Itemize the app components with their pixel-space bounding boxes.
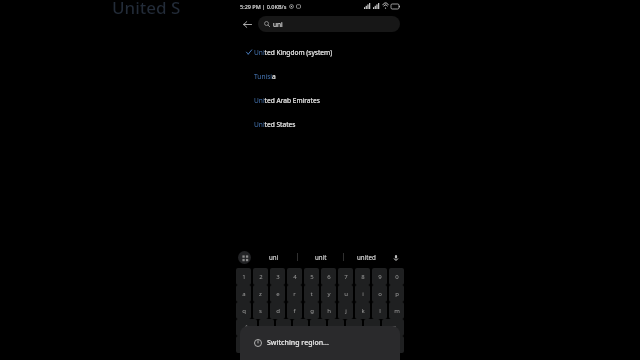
button[interactable]: r — [287, 285, 302, 302]
button[interactable]: 0 — [389, 268, 404, 285]
staticText: t — [310, 290, 313, 298]
button[interactable]: l — [372, 302, 387, 319]
staticText: United S — [112, 0, 181, 19]
button[interactable]: c — [293, 319, 308, 336]
staticText: n — [352, 324, 356, 332]
button[interactable]: uni — [251, 246, 297, 268]
button[interactable]: p — [389, 285, 404, 302]
staticText: v — [316, 324, 320, 332]
staticText: 4 — [293, 273, 297, 281]
button[interactable]: Shift — [236, 319, 257, 336]
button[interactable]: n — [346, 319, 362, 336]
button[interactable]: w — [259, 319, 274, 336]
button[interactable]: Tunisia — [234, 64, 406, 88]
staticText: 1 — [242, 273, 246, 281]
button[interactable]: Keyboard settings — [238, 251, 251, 264]
button[interactable]: z — [253, 285, 268, 302]
staticText: p — [395, 290, 399, 298]
button[interactable]: t — [304, 285, 319, 302]
button[interactable]: 4 — [287, 268, 302, 285]
staticText: i — [362, 290, 364, 298]
button[interactable]: Backspace — [382, 319, 404, 336]
staticText: s — [259, 307, 262, 315]
button[interactable]: uni — [258, 16, 400, 32]
staticText: United Arab Emirates — [254, 96, 320, 105]
button[interactable]: 7 — [338, 268, 353, 285]
button[interactable]: j — [338, 302, 353, 319]
staticText: , — [267, 341, 269, 349]
button[interactable]: e — [270, 285, 285, 302]
button[interactable]: 8 — [355, 268, 370, 285]
staticText: United Kingdom (system) — [254, 48, 333, 57]
staticText: f — [293, 307, 296, 315]
button[interactable]: q — [236, 302, 251, 319]
staticText: b — [334, 324, 338, 332]
button[interactable]: OK — [384, 336, 404, 353]
button[interactable]: f — [287, 302, 302, 319]
button[interactable]: ?123 — [236, 336, 256, 353]
staticText: 8 — [361, 273, 365, 281]
button[interactable] — [280, 336, 360, 353]
button[interactable]: unit — [298, 246, 343, 268]
staticText: 9 — [378, 273, 382, 281]
button[interactable]: 6 — [321, 268, 336, 285]
button[interactable]: Back — [238, 15, 256, 33]
staticText: 6 — [327, 273, 331, 281]
staticText: ' — [371, 324, 373, 332]
staticText: h — [327, 307, 331, 315]
button[interactable]: h — [321, 302, 336, 319]
button[interactable]: united — [344, 246, 389, 268]
staticText: 5 — [310, 273, 314, 281]
button[interactable]: s — [253, 302, 268, 319]
staticText: 0 — [395, 273, 399, 281]
staticText: 5:29 PM | 0.0KB/s — [240, 3, 287, 10]
staticText: y — [327, 290, 331, 298]
button[interactable]: 2 — [253, 268, 268, 285]
button[interactable]: United States — [234, 112, 406, 136]
staticText: k — [361, 307, 365, 315]
staticText: j — [345, 307, 347, 315]
button[interactable]: v — [310, 319, 326, 336]
button[interactable]: m — [389, 302, 404, 319]
button[interactable]: a — [236, 285, 251, 302]
staticText: r — [293, 290, 296, 298]
button[interactable]: y — [321, 285, 336, 302]
staticText: Switching region... — [267, 338, 329, 348]
staticText: u — [344, 290, 348, 298]
button[interactable]: g — [304, 302, 319, 319]
button[interactable]: United Arab Emirates — [234, 88, 406, 112]
button[interactable]: k — [355, 302, 370, 319]
staticText: united — [357, 253, 376, 261]
staticText: g — [310, 307, 314, 315]
staticText: uni — [269, 253, 279, 261]
staticText: l — [379, 307, 381, 315]
button[interactable]: i — [355, 285, 370, 302]
staticText: q — [242, 307, 246, 315]
staticText: e — [276, 290, 280, 298]
staticText: o — [378, 290, 382, 298]
staticText: w — [264, 324, 269, 332]
button[interactable]: o — [372, 285, 387, 302]
button[interactable]: x — [276, 319, 291, 336]
button[interactable]: 9 — [372, 268, 387, 285]
button[interactable]: United Kingdom (system) — [234, 40, 406, 64]
staticText: uni — [273, 20, 283, 29]
button[interactable]: Voice input — [389, 251, 402, 264]
button[interactable]: , — [258, 336, 278, 353]
staticText: Tunisia — [254, 72, 276, 81]
button[interactable]: ' — [364, 319, 380, 336]
button[interactable]: d — [270, 302, 285, 319]
button[interactable]: 5 — [304, 268, 319, 285]
staticText: x — [282, 324, 286, 332]
staticText: d — [276, 307, 280, 315]
staticText: 2 — [259, 273, 263, 281]
button[interactable]: 3 — [270, 268, 285, 285]
staticText: unit — [315, 253, 327, 261]
button[interactable]: b — [328, 319, 344, 336]
button[interactable]: 1 — [236, 268, 251, 285]
button[interactable]: u — [338, 285, 353, 302]
